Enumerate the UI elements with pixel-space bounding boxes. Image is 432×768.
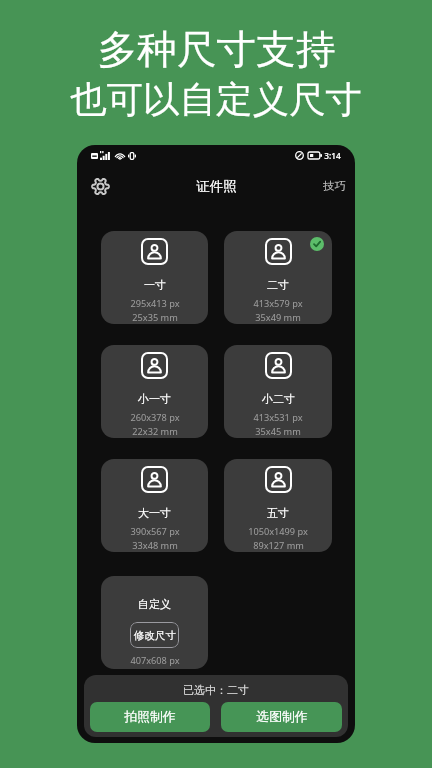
staticText: 自定义	[138, 597, 171, 611]
button[interactable]: 修改尺寸	[130, 622, 179, 648]
staticText: 35x45 mm	[255, 425, 301, 438]
staticText: 证件照	[196, 178, 237, 195]
staticText: 拍照制作	[124, 709, 176, 725]
staticText: 多种尺寸支持	[97, 25, 336, 75]
staticText: 选图制作	[256, 709, 308, 725]
staticText: 修改尺寸	[134, 629, 176, 642]
staticText: 小一寸	[138, 392, 171, 406]
staticText: 260x378 px	[130, 411, 180, 424]
staticText: 413x531 px	[253, 411, 303, 424]
button[interactable]: 小二寸	[224, 345, 332, 438]
button[interactable]: 大一寸	[101, 459, 208, 552]
staticText: 大一寸	[138, 506, 171, 520]
staticText: 413x579 px	[253, 297, 303, 310]
button[interactable]: 拍照制作	[90, 702, 210, 732]
staticText: 1050x1499 px	[248, 525, 308, 538]
button[interactable]: 自定义	[101, 576, 208, 669]
staticText: 295x413 px	[130, 297, 180, 310]
button[interactable]: 五寸	[224, 459, 332, 552]
staticText: 已选中：二寸	[183, 683, 249, 697]
staticText: 技巧	[323, 179, 346, 193]
staticText: 也可以自定义尺寸	[70, 77, 362, 123]
staticText: 一寸	[144, 278, 166, 292]
button[interactable]: 小一寸	[101, 345, 208, 438]
staticText: 25x35 mm	[132, 311, 178, 324]
staticText: 35x49 mm	[255, 311, 301, 324]
button[interactable]: 技巧	[323, 179, 346, 193]
staticText: 五寸	[267, 506, 289, 520]
staticText: 33x48 mm	[132, 539, 178, 552]
staticText: 3:14	[324, 150, 341, 161]
staticText: 89x127 mm	[253, 539, 304, 552]
button[interactable]: Settings	[85, 171, 115, 201]
button[interactable]: 二寸	[224, 231, 332, 324]
staticText: 二寸	[267, 278, 289, 292]
staticText: 小二寸	[262, 392, 295, 406]
staticText: 390x567 px	[130, 525, 180, 538]
button[interactable]: 一寸	[101, 231, 208, 324]
button[interactable]: 选图制作	[221, 702, 342, 732]
staticText: 407x608 px	[130, 654, 180, 667]
staticText: 22x32 mm	[132, 425, 178, 438]
